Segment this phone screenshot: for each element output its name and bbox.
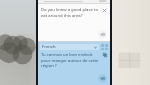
button[interactable]: Copy translation [102, 52, 108, 58]
staticText: Tu connais un bon endroit pour manger au… [41, 52, 100, 68]
button[interactable]: French [40, 44, 99, 50]
staticText: French [42, 44, 94, 50]
button[interactable]: Listen to translation [98, 74, 107, 83]
staticText: Do you know a good place to eat around t… [41, 7, 99, 18]
button[interactable]: Clear text [101, 7, 108, 14]
button[interactable]: Listen [98, 30, 107, 39]
